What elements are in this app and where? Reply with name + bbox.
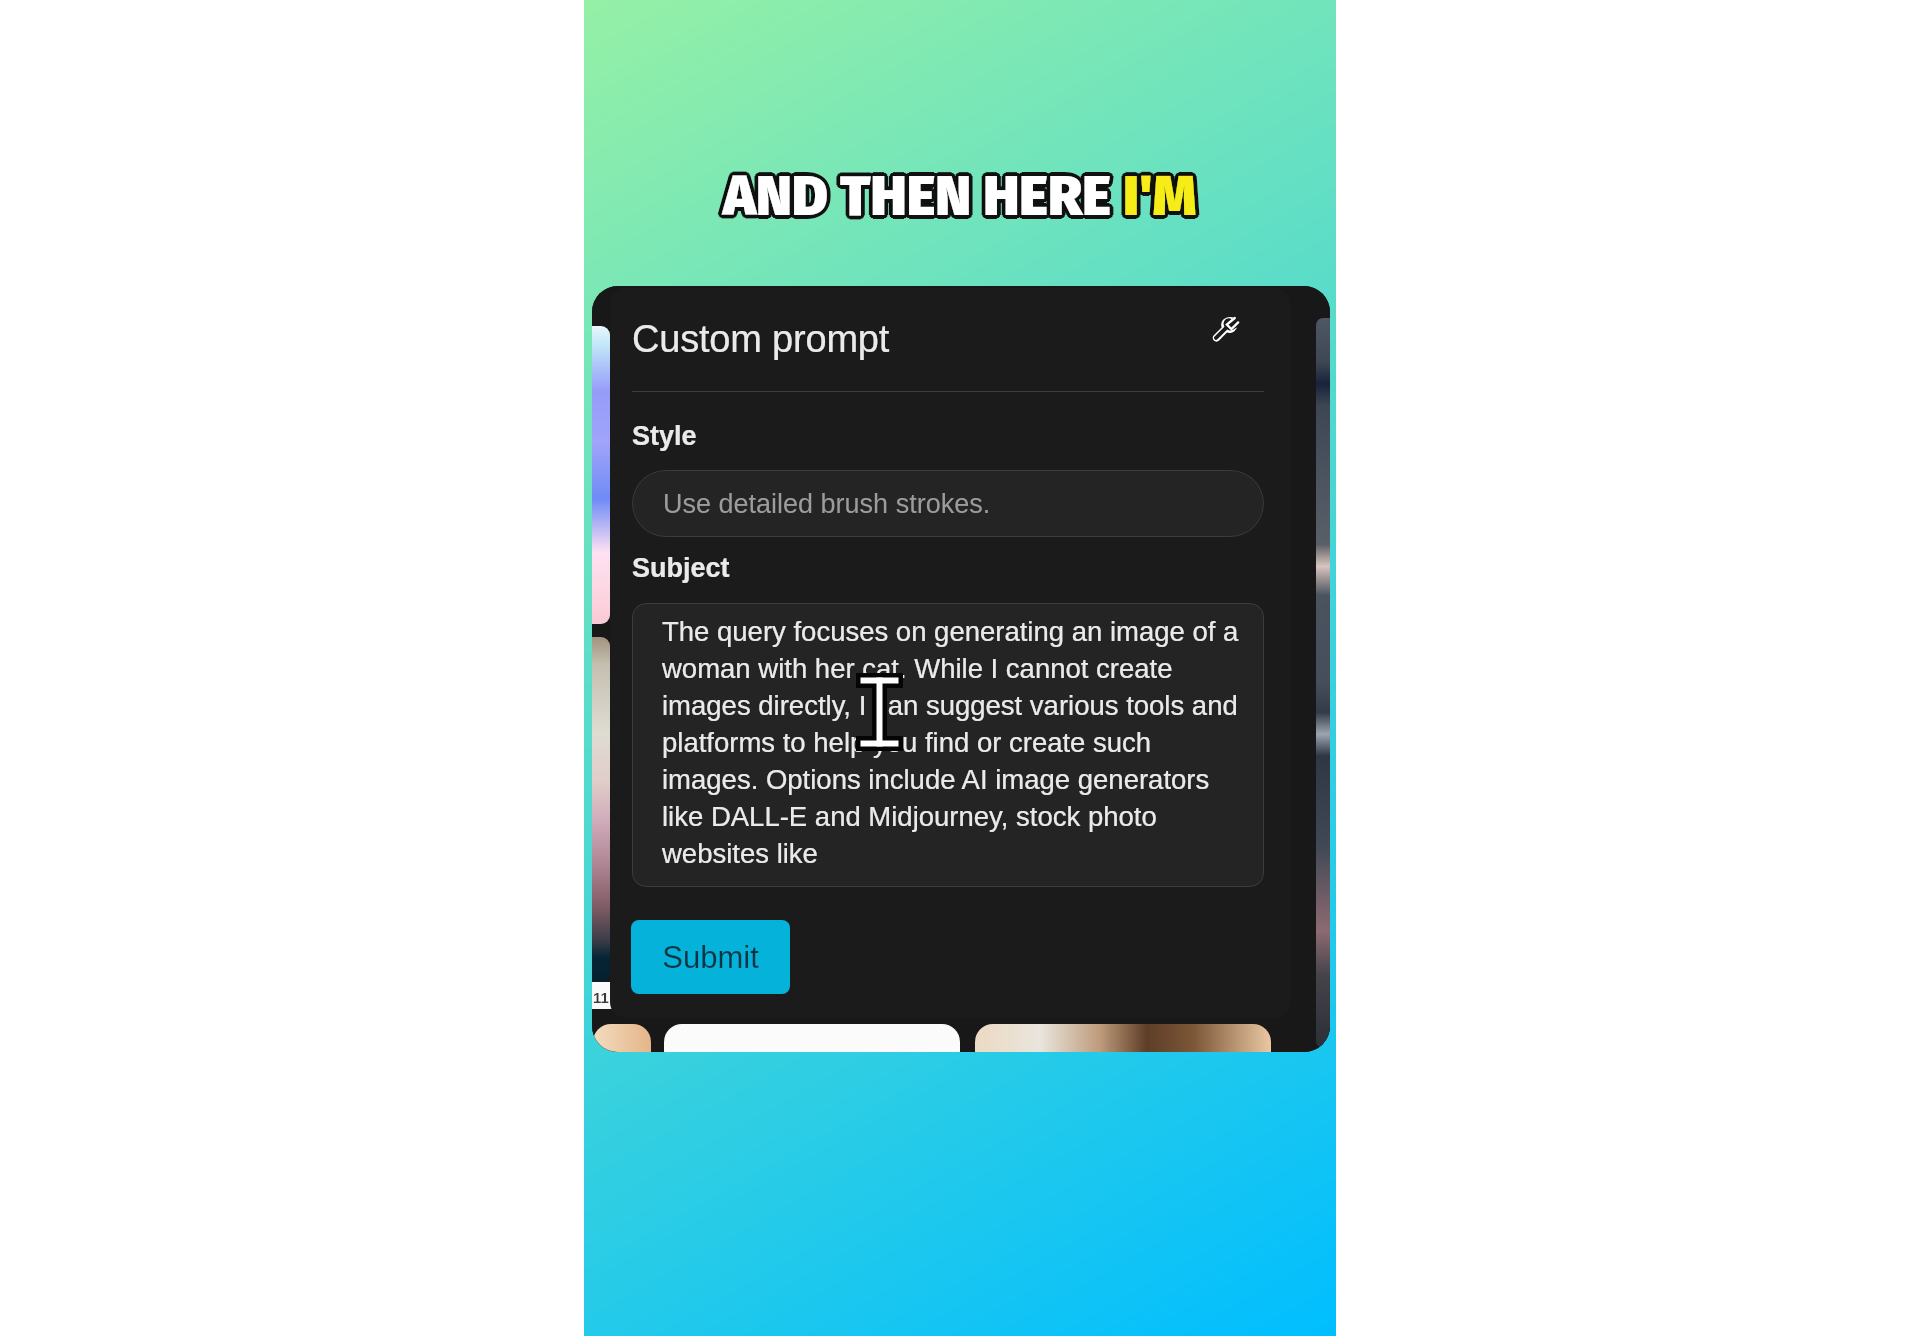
- button[interactable]: Use detailed brush strokes.: [632, 470, 1264, 537]
- staticText: AND THEN HERE: [727, 164, 1127, 230]
- staticText: AND THEN HERE: [723, 163, 1123, 229]
- staticText: AND THEN HERE: [725, 163, 1125, 229]
- staticText: I'M: [1122, 166, 1196, 232]
- staticText: AND THEN HERE: [720, 166, 1120, 232]
- staticText: AND THEN HERE: [725, 162, 1125, 228]
- staticText: I'M: [1121, 162, 1195, 228]
- staticText: AND THEN HERE: [721, 165, 1121, 231]
- button[interactable]: Settings: [1196, 303, 1254, 361]
- staticText: I'M: [1122, 167, 1196, 233]
- staticText: images. Options include AI image generat…: [662, 764, 1210, 795]
- staticText: AND THEN HERE: [719, 164, 1119, 230]
- staticText: AND THEN HERE: [722, 166, 1122, 232]
- staticText: The query focuses on generating an image…: [662, 616, 1239, 647]
- staticText: AND THEN HERE: [725, 161, 1125, 227]
- staticText: AND THEN HERE: [723, 160, 1123, 226]
- staticText: woman with her cat. While I cannot creat…: [662, 653, 1173, 684]
- staticText: I'M: [1125, 165, 1199, 231]
- staticText: I'M: [1125, 167, 1199, 233]
- staticText: I'M: [1121, 167, 1195, 233]
- staticText: AND THEN HERE: [720, 162, 1120, 228]
- staticText: I'M: [1123, 166, 1197, 232]
- staticText: AND THEN HERE: [724, 164, 1124, 230]
- staticText: I'M: [1120, 166, 1194, 232]
- staticText: Use detailed brush strokes.: [663, 489, 991, 519]
- button[interactable]: Submit: [631, 920, 790, 994]
- staticText: I'M: [1125, 162, 1199, 228]
- staticText: I'M: [1122, 162, 1196, 228]
- staticText: I'M: [1124, 164, 1198, 230]
- staticText: I'M: [1120, 165, 1194, 231]
- staticText: AND THEN HERE: [720, 163, 1120, 229]
- staticText: AND THEN HERE: [721, 167, 1121, 233]
- staticText: I'M: [1126, 163, 1200, 229]
- staticText: Custom prompt: [632, 318, 890, 360]
- staticText: AND THEN HERE: [723, 168, 1123, 234]
- staticText: I'M: [1122, 164, 1196, 230]
- staticText: I'M: [1123, 163, 1197, 229]
- staticText: I'M: [1124, 163, 1198, 229]
- staticText: AND THEN HERE: [726, 162, 1126, 228]
- staticText: AND THEN HERE: [724, 165, 1124, 231]
- staticText: images directly, I can suggest various t…: [662, 690, 1238, 721]
- staticText: I'M: [1125, 161, 1199, 227]
- staticText: I'M: [1126, 165, 1200, 231]
- staticText: AND THEN HERE: [726, 164, 1126, 230]
- staticText: I'M: [1123, 168, 1197, 234]
- staticText: AND THEN HERE: [721, 162, 1121, 228]
- staticText: I'M: [1122, 161, 1196, 227]
- staticText: I'M: [1124, 167, 1198, 233]
- staticText: I'M: [1120, 162, 1194, 228]
- staticText: AND THEN HERE: [721, 166, 1121, 232]
- staticText: I'M: [1126, 162, 1200, 228]
- staticText: AND THEN HERE: [721, 163, 1121, 229]
- staticText: AND THEN HERE: [726, 165, 1126, 231]
- staticText: I'M: [1122, 165, 1196, 231]
- staticText: AND THEN HERE: [723, 167, 1123, 233]
- staticText: I'M: [1124, 166, 1198, 232]
- staticText: AND THEN HERE: [724, 163, 1124, 229]
- staticText: AND THEN HERE: [722, 167, 1122, 233]
- staticText: platforms to help you find or create suc…: [662, 727, 1152, 758]
- staticText: I'M: [1123, 165, 1197, 231]
- staticText: AND THEN HERE: [725, 164, 1125, 230]
- staticText: AND THEN HERE: [726, 166, 1126, 232]
- staticText: AND THEN HERE: [721, 164, 1121, 230]
- staticText: I'M: [1121, 161, 1195, 227]
- staticText: I'M: [1119, 164, 1193, 230]
- staticText: I'M: [1125, 163, 1199, 229]
- staticText: Style: [632, 421, 697, 451]
- staticText: AND THEN HERE: [722, 161, 1122, 227]
- staticText: AND THEN HERE: [722, 162, 1122, 228]
- staticText: AND THEN HERE: [720, 165, 1120, 231]
- staticText: AND THEN HERE: [724, 166, 1124, 232]
- staticText: AND THEN HERE: [723, 165, 1123, 231]
- staticText: I'M: [1123, 161, 1197, 227]
- staticText: I'M: [1121, 166, 1195, 232]
- button[interactable]: The query focuses on generating an image…: [632, 603, 1264, 887]
- staticText: I'M: [1124, 165, 1198, 231]
- staticText: I'M: [1126, 164, 1200, 230]
- staticText: AND THEN HERE: [725, 167, 1125, 233]
- staticText: AND THEN HERE: [724, 162, 1124, 228]
- staticText: AND THEN HERE: [723, 162, 1123, 228]
- staticText: AND THEN HERE: [722, 164, 1122, 230]
- staticText: AND THEN HERE: [726, 163, 1126, 229]
- staticText: I'M: [1124, 161, 1198, 227]
- staticText: like DALL-E and Midjourney, stock photo: [662, 801, 1157, 832]
- staticText: I'M: [1121, 164, 1195, 230]
- staticText: AND THEN HERE: [725, 166, 1125, 232]
- staticText: I'M: [1123, 167, 1197, 233]
- staticText: Subject: [632, 553, 730, 583]
- staticText: I'M: [1123, 164, 1197, 230]
- staticText: AND THEN HERE: [723, 164, 1123, 230]
- staticText: AND THEN HERE: [724, 161, 1124, 227]
- staticText: AND THEN HERE: [723, 166, 1123, 232]
- staticText: I'M: [1127, 164, 1201, 230]
- staticText: I'M: [1120, 163, 1194, 229]
- staticText: I'M: [1123, 162, 1197, 228]
- staticText: I'M: [1121, 165, 1195, 231]
- staticText: I'M: [1121, 163, 1195, 229]
- staticText: AND THEN HERE: [722, 165, 1122, 231]
- staticText: I'M: [1122, 163, 1196, 229]
